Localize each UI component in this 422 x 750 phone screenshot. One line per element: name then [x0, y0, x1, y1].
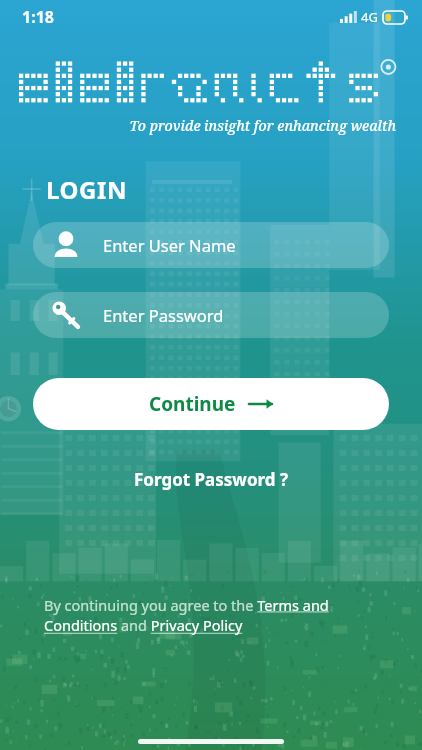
staticText: Forgot Password ? — [134, 468, 289, 491]
staticText: Enter Password — [103, 304, 224, 326]
staticText: To provide insight for enhancing wealth — [0, 116, 396, 135]
staticText: Continue — [149, 391, 236, 417]
button[interactable]: Continue — [33, 378, 389, 430]
button[interactable]: Forgot Password ? — [124, 464, 299, 495]
staticText: LOGIN — [46, 173, 128, 206]
staticText: 4G — [361, 8, 378, 26]
button[interactable]: By continuing you agree to the Terms and… — [44, 595, 378, 636]
staticText: 1:18 — [22, 6, 54, 28]
staticText: By continuing you agree to the Terms and… — [44, 595, 378, 636]
button[interactable]: Enter Password — [33, 292, 389, 338]
button[interactable]: Enter User Name — [33, 222, 389, 268]
staticText: Enter User Name — [103, 234, 236, 256]
